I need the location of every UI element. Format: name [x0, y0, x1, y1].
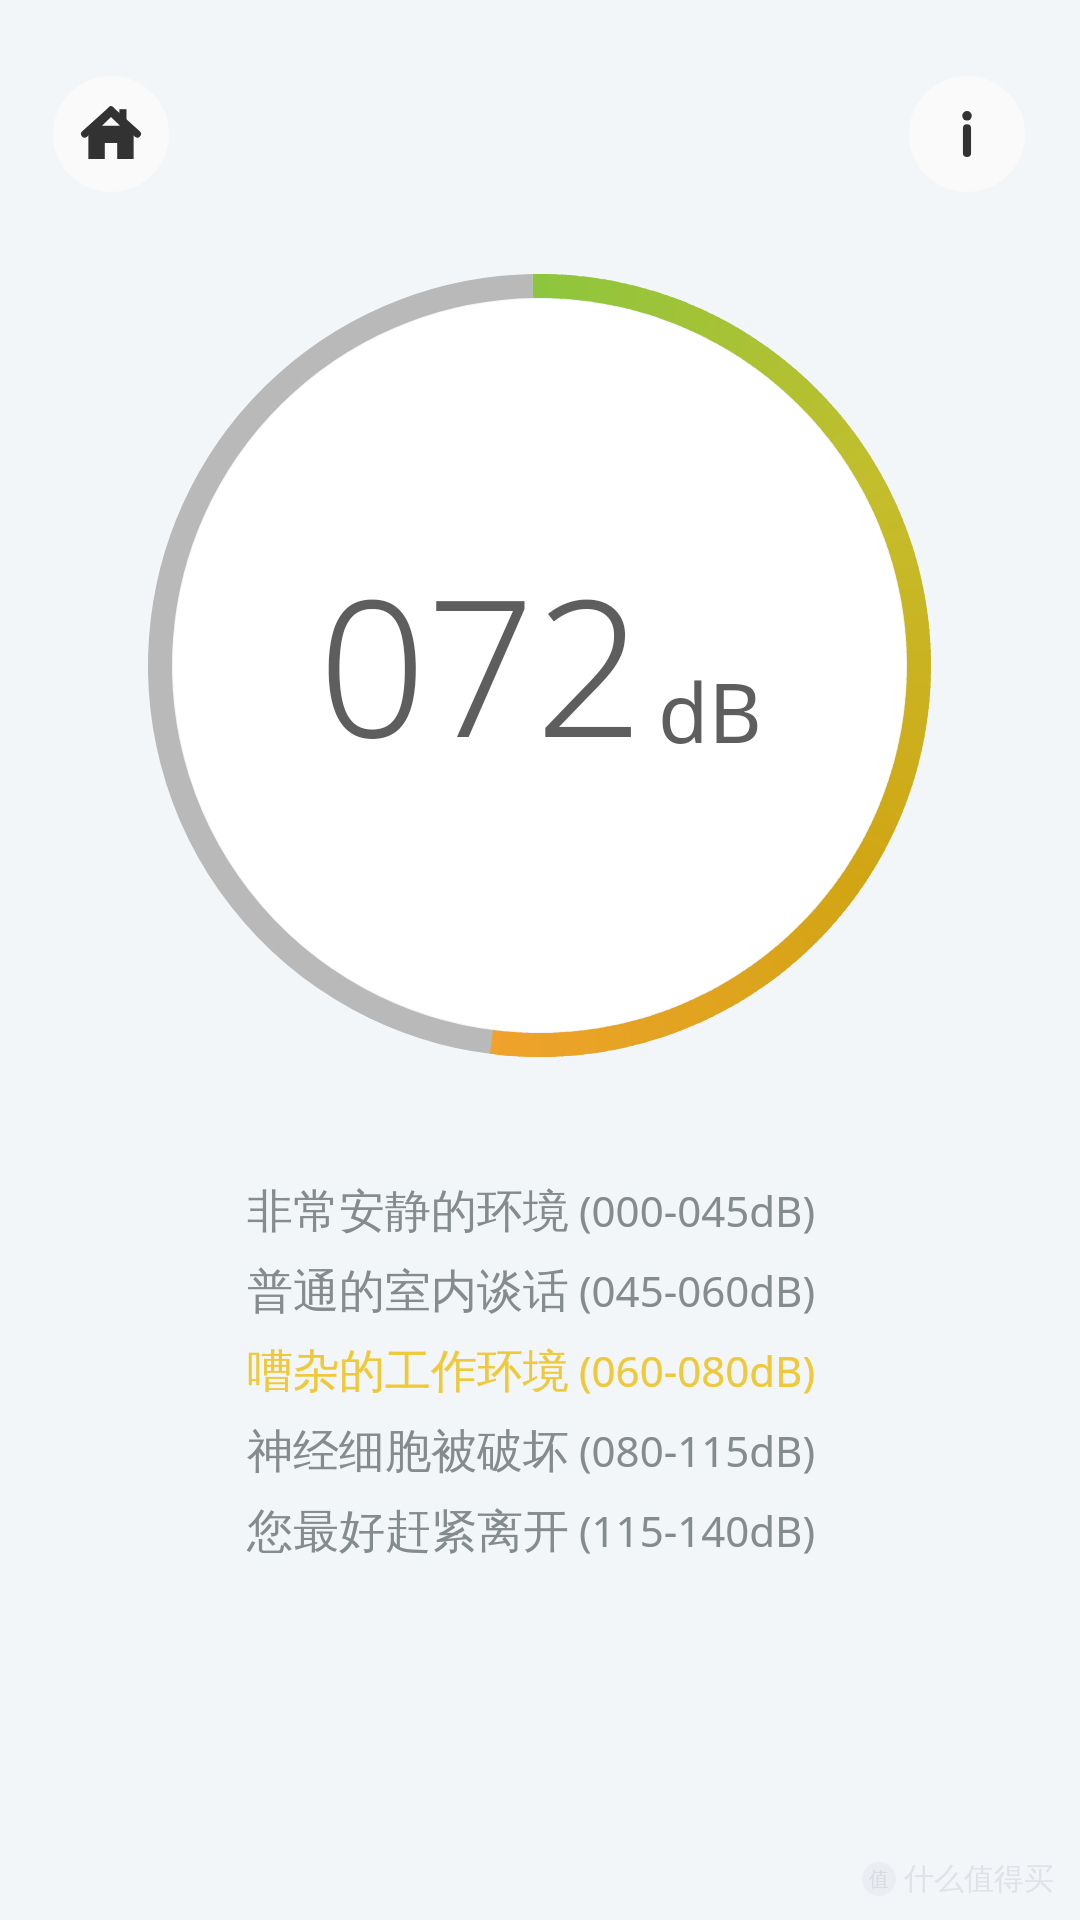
staticText: 什么值得买: [904, 1860, 1054, 1898]
staticText: (115-140dB): [579, 1502, 815, 1559]
staticText: 您最好赶紧离开: [247, 1503, 569, 1561]
staticText: (045-060dB): [579, 1262, 815, 1319]
button[interactable]: Info: [909, 76, 1025, 192]
staticText: 神经细胞被破坏: [247, 1423, 569, 1481]
staticText: 非常安静的环境: [247, 1183, 569, 1241]
staticText: 普通的室内谈话: [247, 1263, 569, 1321]
button[interactable]: 神经细胞被破坏: [0, 1412, 1080, 1492]
staticText: 嘈杂的工作环境: [247, 1343, 569, 1401]
staticText: 值: [869, 1867, 889, 1892]
button[interactable]: 您最好赶紧离开: [0, 1492, 1080, 1572]
staticText: (060-080dB): [579, 1342, 815, 1399]
staticText: 072: [318, 534, 644, 793]
button[interactable]: 嘈杂的工作环境: [0, 1332, 1080, 1412]
staticText: (000-045dB): [579, 1182, 815, 1239]
button[interactable]: Home: [53, 76, 169, 192]
staticText: dB: [658, 655, 762, 767]
button[interactable]: 非常安静的环境: [0, 1172, 1080, 1252]
button[interactable]: 普通的室内谈话: [0, 1252, 1080, 1332]
staticText: (080-115dB): [579, 1422, 815, 1479]
